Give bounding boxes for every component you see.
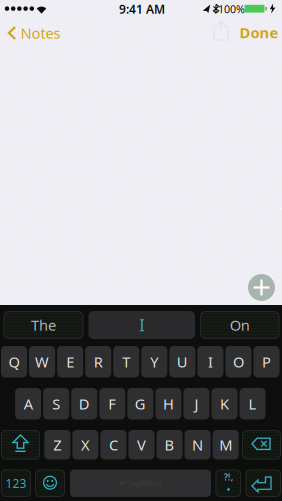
staticText: V xyxy=(137,435,146,454)
button[interactable]: D xyxy=(71,388,97,419)
button[interactable]: B xyxy=(156,430,183,459)
staticText: X xyxy=(81,435,90,454)
button[interactable]: Add attachment xyxy=(248,274,275,301)
button[interactable]: Share xyxy=(208,17,234,43)
staticText: S xyxy=(52,394,60,413)
staticText: L xyxy=(249,394,257,413)
staticText: Y xyxy=(150,352,158,371)
staticText: M xyxy=(219,435,232,454)
button[interactable]: Z xyxy=(44,430,70,459)
button[interactable]: I xyxy=(197,346,223,377)
staticText: N xyxy=(192,435,203,454)
staticText: O xyxy=(233,352,244,371)
button[interactable]: Done xyxy=(237,17,281,47)
button[interactable]: Emoji xyxy=(35,469,65,497)
staticText: F xyxy=(108,394,116,413)
button[interactable]: Y xyxy=(141,346,167,377)
button[interactable]: J xyxy=(183,388,209,419)
staticText: T xyxy=(122,352,130,371)
button[interactable]: M xyxy=(213,430,239,459)
button[interactable]: Return xyxy=(245,469,281,497)
button[interactable]: O xyxy=(225,346,251,377)
staticText: G xyxy=(135,394,146,413)
staticText: C xyxy=(109,435,118,454)
staticText: H xyxy=(163,394,174,413)
staticText: P xyxy=(262,352,271,371)
staticText: 100% xyxy=(218,2,245,16)
staticText: Q xyxy=(9,352,20,371)
button[interactable]: Punctuation xyxy=(215,469,241,497)
staticText: J xyxy=(194,394,198,413)
button[interactable]: V xyxy=(128,430,154,459)
staticText: K xyxy=(220,394,229,413)
button[interactable]: Q xyxy=(1,346,27,377)
button[interactable]: Back to Notes xyxy=(6,17,62,49)
staticText: ?!, xyxy=(224,471,234,483)
button[interactable]: A xyxy=(15,388,41,419)
button[interactable]: E xyxy=(57,346,83,377)
button[interactable]: P xyxy=(253,346,279,377)
staticText: U xyxy=(177,352,188,371)
button[interactable]: T xyxy=(113,346,139,377)
staticText: 123 xyxy=(5,475,26,491)
staticText: 9:41 AM xyxy=(119,1,165,17)
staticText: Notes xyxy=(20,23,60,43)
button[interactable]: Delete xyxy=(242,430,281,459)
staticText: I xyxy=(208,352,213,371)
staticText: I xyxy=(139,314,144,336)
button[interactable]: Numbers xyxy=(1,469,31,497)
staticText: On xyxy=(230,315,250,335)
staticText: D xyxy=(79,394,90,413)
button[interactable]: G xyxy=(127,388,153,419)
button[interactable]: L xyxy=(239,388,266,419)
staticText: Done xyxy=(239,23,278,42)
button[interactable]: W xyxy=(29,346,55,377)
staticText: Z xyxy=(53,435,61,454)
button[interactable]: C xyxy=(100,430,126,459)
button[interactable]: U xyxy=(169,346,195,377)
button[interactable]: R xyxy=(85,346,111,377)
staticText: W xyxy=(35,352,49,371)
button[interactable]: F xyxy=(99,388,125,419)
button[interactable]: K xyxy=(211,388,237,419)
staticText: A xyxy=(24,394,33,413)
button[interactable]: X xyxy=(72,430,98,459)
button[interactable]: H xyxy=(155,388,181,419)
button[interactable]: On xyxy=(200,311,279,339)
button[interactable]: N xyxy=(184,430,211,459)
button[interactable]: The xyxy=(3,311,83,339)
button[interactable]: Shift xyxy=(1,430,40,459)
staticText: E xyxy=(66,352,74,371)
staticText: The xyxy=(31,315,56,335)
button[interactable]: S xyxy=(43,388,69,419)
staticText: B xyxy=(165,435,175,454)
staticText: R xyxy=(94,352,103,371)
button[interactable]: I xyxy=(88,311,195,339)
